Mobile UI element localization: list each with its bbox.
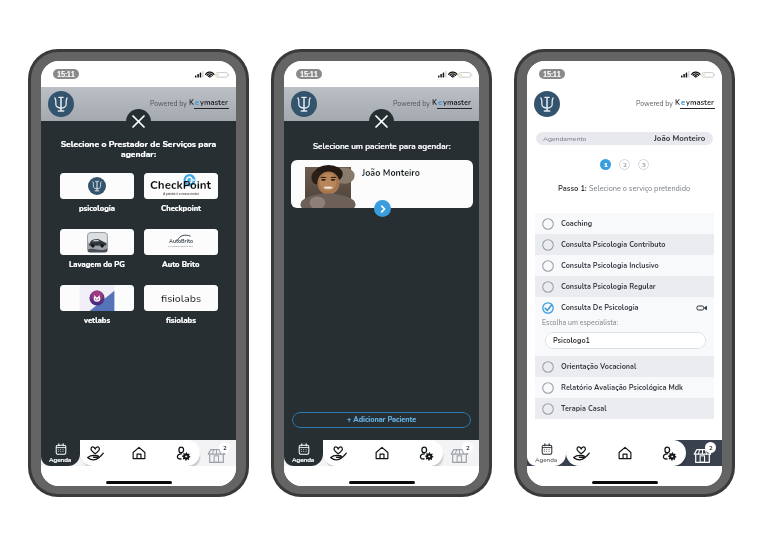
staticText: Escolha um especialista: [542,318,619,328]
staticText: CheckPoint [150,177,212,193]
button[interactable] [60,229,134,255]
staticText: Auto Brito [162,259,200,269]
staticText: Selecione o Prestador de Serviços para a… [59,138,218,160]
button[interactable]: Início [370,441,394,465]
button[interactable]: Agendamento [536,132,713,145]
button[interactable]: Loja [208,442,230,464]
staticText: Agenda [535,456,558,464]
staticText: A paixão é o nosso motor [163,192,199,196]
staticText: Lavagem do PG [69,259,125,269]
button[interactable]: Consulta Psicologia Inclusivo [535,255,714,276]
button[interactable]: 2 [619,159,630,170]
staticText: e [438,98,443,108]
staticText: sua viagem começa aqui [168,245,194,248]
button[interactable]: Avançar [374,200,391,217]
staticText: ymaster [686,98,715,108]
staticText: e [681,98,686,108]
button[interactable]: Agenda [527,440,566,466]
button[interactable]: Agenda [284,440,323,466]
button[interactable]: Coaching [535,213,714,234]
staticText: K [675,98,681,108]
staticText: João Monteiro [654,133,706,144]
staticText: 15:11 [300,70,318,79]
button[interactable] [60,285,134,311]
staticText: 2 [623,160,627,169]
staticText: 2 [223,444,227,452]
button[interactable]: Consulta Psicologia Regular [535,276,714,297]
staticText: Psicologo1 [553,336,590,346]
staticText: Selecione o serviço pretendido [589,184,691,194]
button[interactable]: Relatório Avaliação Psicológica Mdk [535,377,714,398]
staticText: Orientação Vocacional [561,362,637,372]
staticText: Consulta Psicologia Regular [561,282,656,292]
button[interactable]: Consulta Psicologia Contributo [535,234,714,255]
button[interactable]: Loja [694,442,716,464]
staticText: ymaster [443,98,472,108]
staticText: Consulta Psicologia Contributo [561,240,666,250]
button[interactable]: Cuidados [83,441,107,465]
staticText: 15:11 [57,70,75,79]
staticText: 1 [604,160,608,169]
button[interactable]: Consulta De Psicologia [535,297,714,318]
button[interactable]: 3 [638,159,649,170]
staticText: K [189,98,195,108]
staticText: 2 [466,444,470,452]
button[interactable]: + Adicionar Paciente [292,412,471,428]
button[interactable]: fisiolabs [144,285,218,311]
staticText: Selecione um paciente para agendar: [313,141,451,152]
staticText: Passo 1: [558,184,589,194]
staticText: Agenda [49,456,72,464]
button[interactable]: Psicologo1 [545,332,706,349]
button[interactable]: Terapia Casal [535,398,714,419]
staticText: Terapia Casal [561,404,607,414]
button[interactable]: Orientação Vocacional [535,356,714,377]
staticText: Consulta De Psicologia [561,303,639,313]
button[interactable]: Cuidados [569,441,593,465]
staticText: K [432,98,438,108]
staticText: Powered by [393,99,432,108]
button[interactable]: Início [613,441,637,465]
staticText: e [195,98,200,108]
staticText: fisiolabs [161,291,202,305]
staticText: Powered by [150,99,189,108]
button[interactable] [60,173,134,199]
button[interactable]: Perfil [657,441,681,465]
staticText: Agendamento [543,134,587,143]
staticText: Checkpoint [161,203,202,213]
staticText: Coaching [561,219,593,229]
button[interactable]: Cuidados [326,441,350,465]
button[interactable]: 1 [600,159,611,170]
staticText: psicologia [79,203,116,213]
button[interactable]: Loja [451,442,473,464]
button[interactable]: CheckPoint [144,173,218,199]
staticText: Powered by [636,99,675,108]
staticText: 15:11 [543,70,561,79]
staticText: 2 [709,444,713,452]
staticText: ymaster [200,98,229,108]
staticText: Consulta Psicologia Inclusivo [561,261,659,271]
button[interactable]: Perfil [414,441,438,465]
button[interactable]: Fechar [369,109,394,134]
button[interactable]: AutoBrito [144,229,218,255]
staticText: 3 [642,160,646,169]
staticText: AutoBrito [169,238,194,245]
staticText: Agenda [292,456,315,464]
button[interactable]: Fechar [126,109,151,134]
staticText: Relatório Avaliação Psicológica Mdk [561,383,684,393]
button[interactable]: Início [127,441,151,465]
staticText: fisiolabs [166,315,196,325]
staticText: João Monteiro [362,167,420,179]
button[interactable]: Perfil [171,441,195,465]
button[interactable]: Agenda [41,440,80,466]
staticText: vetlabs [84,315,111,325]
staticText: + Adicionar Paciente [347,415,417,425]
button[interactable]: João Monteiro [291,160,473,208]
